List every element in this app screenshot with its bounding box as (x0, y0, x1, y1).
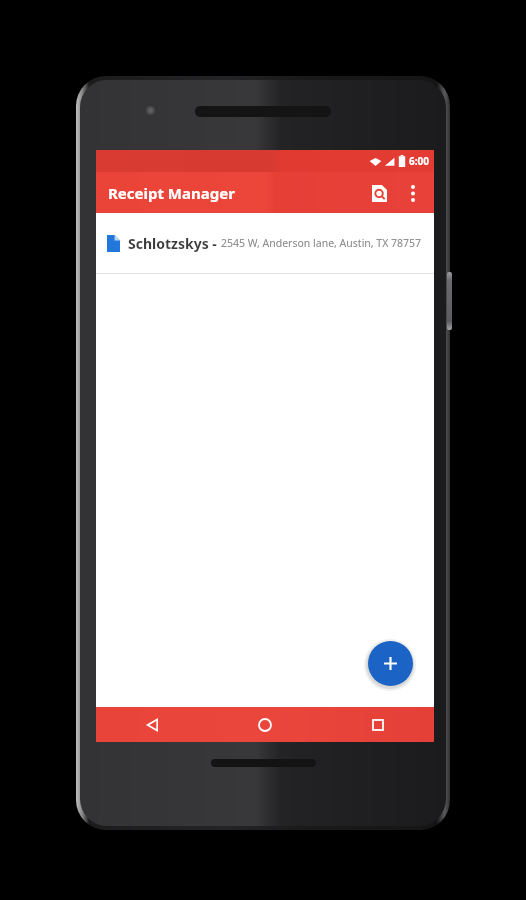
button[interactable]: Home (208, 707, 321, 742)
staticText: Receipt Manager (108, 183, 235, 203)
button[interactable]: Add receipt (368, 641, 413, 686)
staticText: 6:00 (409, 154, 429, 168)
staticText: 2545 W, Anderson lane, Austin, TX 78757 (221, 236, 434, 250)
button[interactable]: Schlotzskys - (96, 213, 434, 273)
button[interactable]: Recent apps (321, 707, 434, 742)
button[interactable]: Back (96, 707, 208, 742)
button[interactable]: Search receipts (362, 176, 396, 210)
staticText: Schlotzskys - (128, 234, 221, 253)
button[interactable]: More options (396, 176, 430, 210)
